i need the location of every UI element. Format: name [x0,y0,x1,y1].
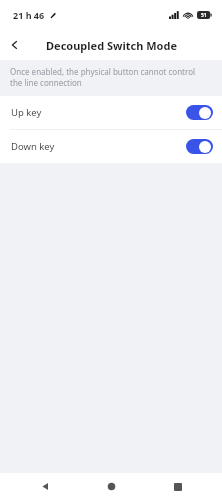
button[interactable]: Toggle on [186,105,213,120]
button[interactable]: Down key [0,130,222,163]
staticText: 21 h 46 [13,9,45,21]
staticText: Down key [11,140,55,153]
staticText: Once enabled, the physical button cannot… [10,66,208,88]
button[interactable]: Toggle on [186,139,213,154]
staticText: 51 [201,12,207,19]
button[interactable]: Up key [0,96,222,129]
button[interactable]: Home [89,473,133,500]
button[interactable]: Recent apps [156,473,200,500]
button[interactable]: Back [23,473,67,500]
staticText: Up key [11,106,42,119]
staticText: Decoupled Switch Mode [46,38,177,53]
button[interactable]: Back [0,30,30,60]
